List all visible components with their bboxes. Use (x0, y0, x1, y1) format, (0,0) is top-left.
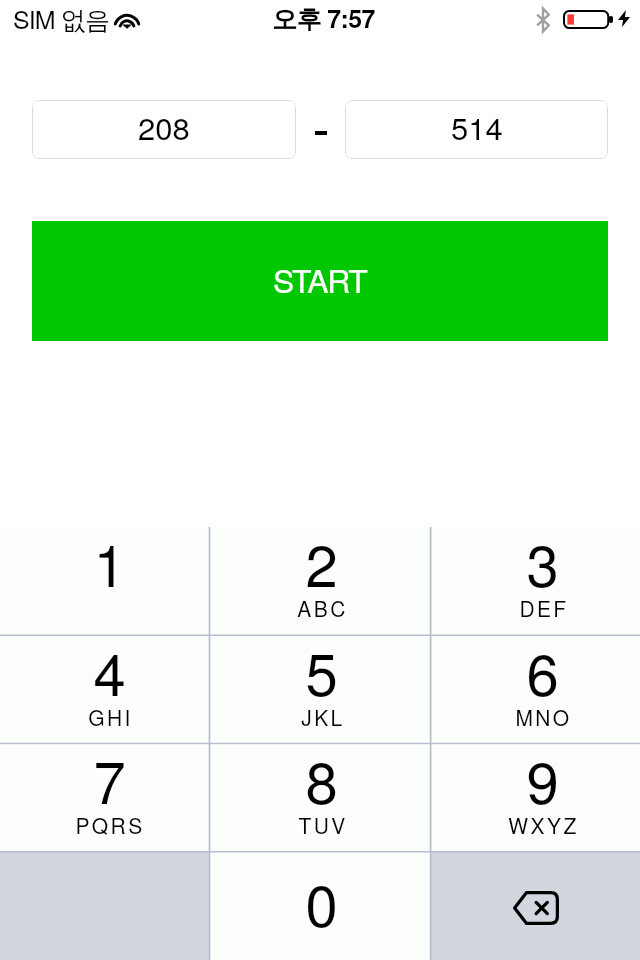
button[interactable]: START (32, 221, 608, 341)
button[interactable]: 1 (0, 527, 210, 636)
staticText: 8 (305, 737, 338, 820)
staticText: 0 (305, 860, 338, 943)
button[interactable]: 2 (210, 527, 431, 636)
button[interactable]: 208 (32, 100, 296, 159)
staticText: 4 (93, 629, 126, 712)
staticText: 2 (305, 520, 338, 603)
button[interactable]: 514 (345, 100, 608, 159)
staticText: 오후 7:57 (272, 0, 375, 36)
staticText: 7 (93, 737, 126, 820)
button[interactable]: 6 (431, 636, 640, 744)
staticText: WXYZ (508, 810, 579, 840)
button[interactable]: 3 (431, 527, 640, 636)
staticText: MNO (515, 702, 572, 732)
button[interactable]: 9 (431, 744, 640, 852)
button[interactable]: 8 (210, 744, 431, 852)
staticText: ABC (297, 593, 348, 623)
staticText: 9 (526, 737, 559, 820)
staticText: 514 (451, 104, 503, 148)
button[interactable]: 7 (0, 744, 210, 852)
button[interactable]: 0 (210, 852, 431, 960)
staticText: 6 (526, 629, 559, 712)
staticText: GHI (88, 702, 133, 732)
staticText: SIM 없음 (13, 0, 110, 36)
staticText: 1 (93, 520, 126, 603)
staticText: PQRS (75, 810, 145, 840)
staticText: START (273, 256, 367, 302)
staticText: TUV (298, 810, 348, 840)
button[interactable]: 4 (0, 636, 210, 744)
button[interactable]: Backspace (431, 852, 640, 960)
staticText: JKL (301, 702, 345, 732)
button[interactable]: 5 (210, 636, 431, 744)
staticText: 3 (526, 520, 559, 603)
staticText: 208 (138, 104, 190, 148)
staticText: DEF (519, 593, 569, 623)
staticText: 5 (305, 629, 338, 712)
